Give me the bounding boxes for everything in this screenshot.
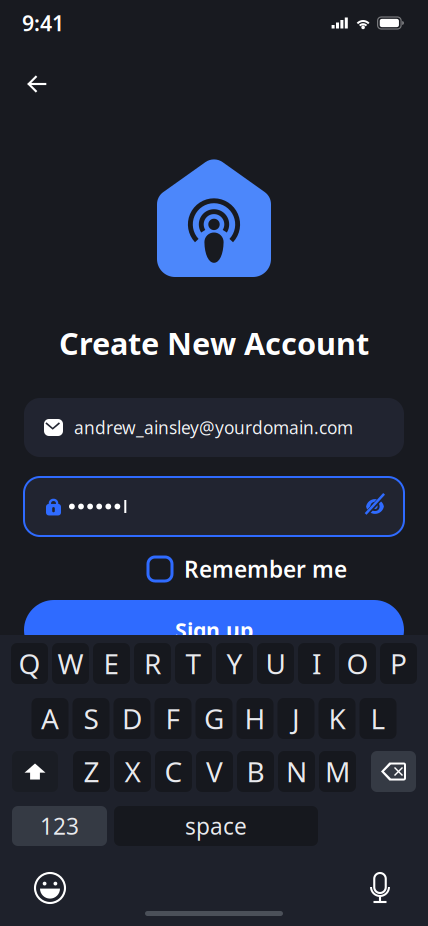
button[interactable]: Back [15, 62, 59, 106]
button[interactable]: G [195, 698, 232, 739]
staticText: G [204, 700, 224, 737]
button[interactable]: Sign up [24, 600, 404, 660]
staticText: C [164, 753, 182, 790]
button[interactable]: D [113, 698, 150, 739]
button[interactable]: Remember me [148, 554, 347, 584]
staticText: 9:41 [22, 9, 64, 37]
staticText: O [346, 645, 368, 682]
button[interactable]: 123 [12, 806, 107, 846]
button[interactable]: L [359, 698, 396, 739]
staticText: B [246, 753, 264, 790]
button[interactable]: S [72, 698, 109, 739]
button[interactable]: O [339, 643, 376, 684]
staticText: Y [226, 645, 242, 682]
button[interactable]: space [114, 806, 318, 846]
staticText: Sign up [175, 616, 253, 644]
staticText: F [165, 700, 180, 737]
button[interactable]: J [277, 698, 314, 739]
button[interactable]: Show password [358, 489, 392, 523]
button[interactable]: U [257, 643, 294, 684]
staticText: K [328, 700, 345, 737]
staticText: H [244, 700, 265, 737]
staticText: R [144, 645, 161, 682]
button[interactable]: X [114, 751, 151, 792]
button[interactable]: V [196, 751, 233, 792]
button[interactable]: Emoji [33, 871, 67, 905]
button[interactable]: E [93, 643, 130, 684]
staticText: E [103, 645, 119, 682]
staticText: I [312, 645, 321, 682]
button[interactable]: R [134, 643, 171, 684]
staticText: Q [18, 645, 40, 682]
staticText: 123 [40, 811, 79, 841]
staticText: L [370, 700, 385, 737]
button[interactable]: Dictate [365, 871, 395, 905]
staticText: andrew_ainsley@yourdomain.com [74, 416, 353, 439]
button[interactable]: A [31, 698, 68, 739]
button[interactable]: Q [11, 643, 48, 684]
button[interactable]: W [52, 643, 89, 684]
button[interactable]: Shift [12, 751, 58, 792]
staticText: T [185, 645, 201, 682]
staticText: space [185, 811, 247, 841]
staticText: X [124, 753, 140, 790]
button[interactable]: I [298, 643, 335, 684]
staticText: N [286, 753, 307, 790]
staticText: P [390, 645, 407, 682]
button[interactable]: T [175, 643, 212, 684]
staticText: M [325, 753, 350, 790]
staticText: W [57, 645, 83, 682]
button[interactable]: Y [216, 643, 253, 684]
button[interactable]: F [154, 698, 191, 739]
button[interactable]: C [155, 751, 192, 792]
button[interactable]: K [318, 698, 355, 739]
staticText: A [41, 700, 59, 737]
staticText: S [83, 700, 98, 737]
button[interactable]: H [236, 698, 273, 739]
button[interactable]: P [380, 643, 417, 684]
staticText: Create New Account [59, 323, 369, 363]
button[interactable]: Delete [371, 751, 416, 792]
staticText: D [122, 700, 142, 737]
staticText: V [206, 753, 223, 790]
button[interactable]: N [278, 751, 315, 792]
button[interactable]: B [237, 751, 274, 792]
button[interactable]: Z [73, 751, 110, 792]
button[interactable]: M [319, 751, 356, 792]
staticText: Remember me [184, 554, 347, 584]
staticText: U [265, 645, 285, 682]
staticText: Z [83, 753, 99, 790]
staticText: J [292, 700, 300, 737]
